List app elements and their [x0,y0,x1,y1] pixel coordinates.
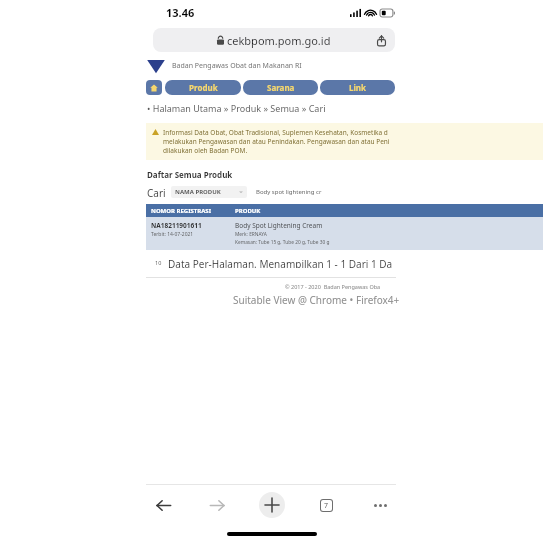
button[interactable]: Share [374,33,388,47]
staticText: Terbit: 14-07-2021 [151,231,194,238]
button[interactable]: NA18211901611 [146,217,543,250]
button[interactable]: Body spot lightening cr [254,186,322,198]
button[interactable]: Back [150,492,176,518]
staticText: 13.46 [166,5,195,20]
staticText: dilakukan oleh Badan POM. [163,146,248,155]
staticText: Badan Pengawas Obat dan Makanan RI [172,61,302,71]
staticText: Sarana [267,82,295,93]
staticText: • Halaman Utama » Produk » Semua » Cari [147,102,326,114]
button[interactable]: Sarana [243,80,318,95]
staticText: Cari [147,186,166,198]
button[interactable]: New tab [259,492,285,518]
staticText: Kemasan: Tube 15 g, Tube 20 g, Tube 30 g [235,239,330,246]
staticText: melakukan Pengawasan dan atau Penindakan… [163,137,390,146]
staticText: Link [349,82,367,93]
button[interactable]: Link [320,80,395,95]
staticText: Body spot lightening cr [256,188,322,196]
staticText: cekbpom.pom.go.id [227,33,331,48]
button[interactable]: More [367,492,393,518]
button[interactable]: Produk [165,80,241,95]
staticText: Daftar Semua Produk [147,169,233,180]
staticText: NOMOR REGISTRASI [151,207,211,215]
staticText: © 2017 - 2020 Badan Pengawas Oba [285,283,381,290]
staticText: Body Spot Lightening Cream [235,221,323,230]
staticText: Merk: ERNAYA [235,231,267,238]
button[interactable]: Home [146,80,162,95]
staticText: Informasi Data Obat, Obat Tradisional, S… [163,128,388,137]
button[interactable]: 10 [147,257,164,268]
staticText: 10 [155,259,162,266]
button[interactable]: Forward [204,492,230,518]
button[interactable]: NAMA PRODUK [171,186,247,198]
staticText: Produk [189,82,218,93]
staticText: 7 [324,501,329,511]
button[interactable]: cekbpom.pom.go.id [153,28,395,52]
staticText: PRODUK [235,207,261,215]
staticText: NA18211901611 [151,221,202,230]
button[interactable]: Tabs [313,492,339,518]
staticText: Suitable View @ Chrome • Firefox4+ [233,293,400,307]
staticText: Data Per-Halaman. Menampilkan 1 - 1 Dari… [168,257,393,268]
staticText: NAMA PRODUK [175,188,221,196]
